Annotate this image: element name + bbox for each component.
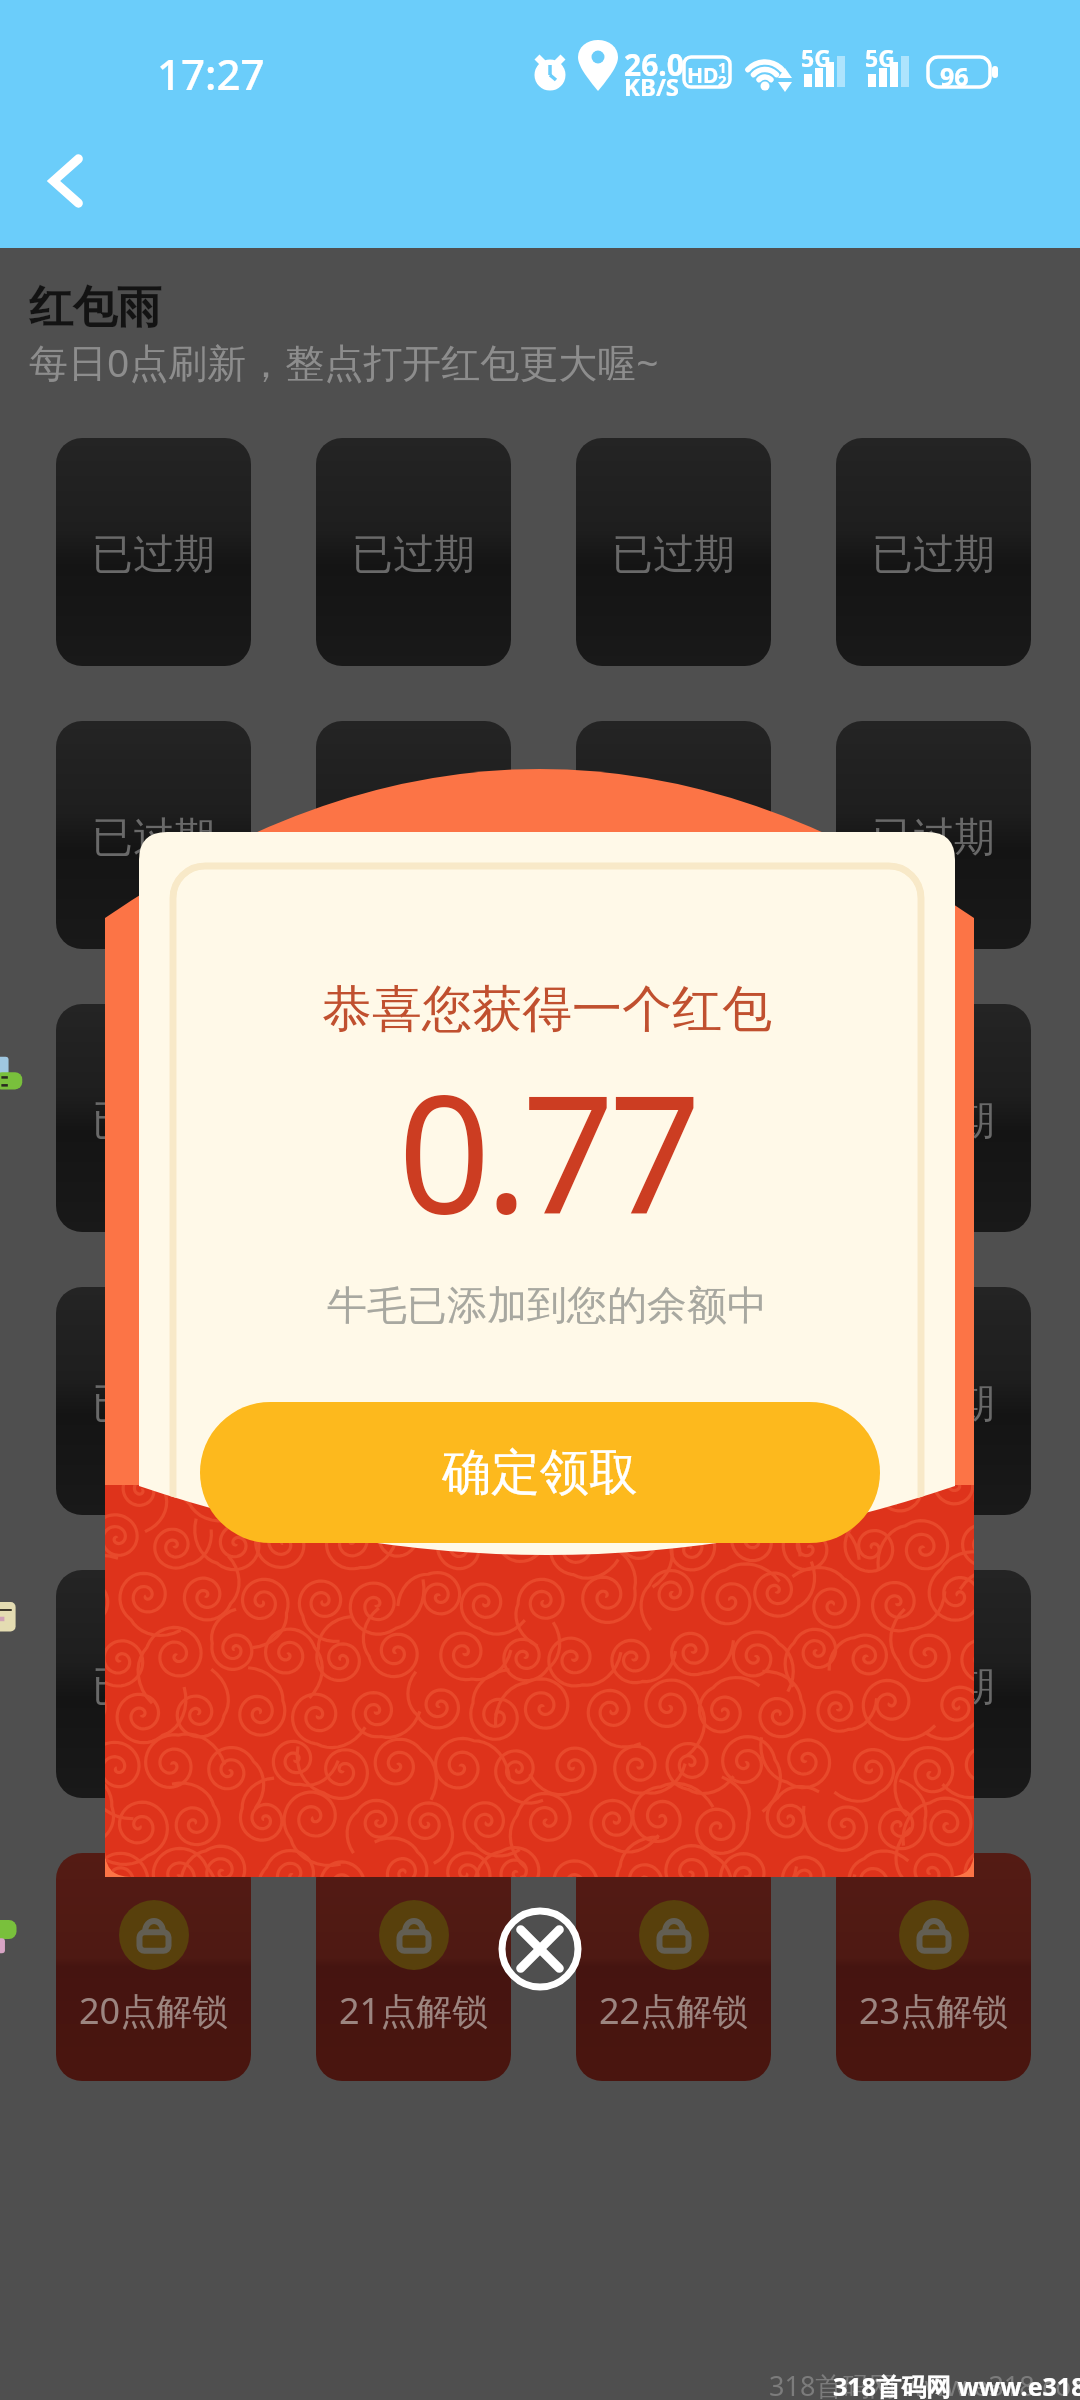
button[interactable]: 已过期 xyxy=(836,1287,1031,1515)
button[interactable]: 已过期 xyxy=(316,438,511,666)
staticText: 已过期 xyxy=(92,1661,215,1713)
button[interactable]: 已过期 xyxy=(56,1004,251,1232)
button[interactable]: 已过期 xyxy=(316,1570,511,1798)
staticText: 17:27 xyxy=(157,45,265,102)
button[interactable]: 已过期 xyxy=(836,438,1031,666)
button[interactable]: 22点解锁 xyxy=(576,1853,771,2081)
staticText: 21点解锁 xyxy=(339,1986,489,2035)
staticText: 已过期 xyxy=(92,1378,215,1430)
staticText: 5G xyxy=(865,42,895,73)
staticText: 已过期 xyxy=(352,1095,475,1147)
staticText: 已过期 xyxy=(612,1378,735,1430)
staticText: HD xyxy=(687,61,719,90)
staticText: 每日0点刷新，整点打开红包更大喔~ xyxy=(29,335,659,388)
staticText: 已过期 xyxy=(612,529,735,581)
staticText: 已过期 xyxy=(612,1661,735,1713)
button[interactable]: 已过期 xyxy=(576,1570,771,1798)
staticText: 23点解锁 xyxy=(859,1986,1009,2035)
staticText: 已过期 xyxy=(352,812,475,864)
button[interactable]: 已过期 xyxy=(56,438,251,666)
button[interactable]: 已过期 xyxy=(56,1570,251,1798)
staticText: 已过期 xyxy=(872,529,995,581)
staticText: 牛毛已添加到您的余额中 xyxy=(327,1280,767,1330)
staticText: 0.77 xyxy=(398,1040,696,1261)
button[interactable]: 已过期 xyxy=(576,1004,771,1232)
staticText: 恭喜您获得一个红包 xyxy=(322,978,772,1041)
staticText: 1 xyxy=(718,57,727,77)
staticText: 318首码网 www.e318.com xyxy=(833,2369,1080,2400)
button[interactable]: Back xyxy=(33,154,87,208)
staticText: 已过期 xyxy=(352,1378,475,1430)
button[interactable]: 已过期 xyxy=(316,1004,511,1232)
staticText: 22点解锁 xyxy=(599,1986,749,2035)
staticText: 已过期 xyxy=(352,529,475,581)
button[interactable]: 已过期 xyxy=(56,1287,251,1515)
staticText: 已过期 xyxy=(92,1095,215,1147)
staticText: 已过期 xyxy=(92,812,215,864)
staticText: 确定领取 xyxy=(442,1442,638,1504)
staticText: 已过期 xyxy=(92,529,215,581)
button[interactable]: 已过期 xyxy=(576,721,771,949)
staticText: 20点解锁 xyxy=(79,1986,229,2035)
staticText: 2 xyxy=(718,70,727,90)
staticText: 已过期 xyxy=(872,1378,995,1430)
staticText: KB/S xyxy=(624,70,680,103)
button[interactable]: 20点解锁 xyxy=(56,1853,251,2081)
button[interactable]: 已过期 xyxy=(316,1287,511,1515)
button[interactable]: 确定领取 xyxy=(200,1402,880,1543)
staticText: 5G xyxy=(801,42,831,73)
button[interactable]: 21点解锁 xyxy=(316,1853,511,2081)
button[interactable]: 已过期 xyxy=(576,438,771,666)
button[interactable]: 已过期 xyxy=(836,721,1031,949)
staticText: 已过期 xyxy=(872,1661,995,1713)
staticText: 已过期 xyxy=(872,812,995,864)
button[interactable]: Close xyxy=(498,1907,582,1991)
button[interactable]: 已过期 xyxy=(576,1287,771,1515)
staticText: 已过期 xyxy=(612,812,735,864)
button[interactable]: 23点解锁 xyxy=(836,1853,1031,2081)
staticText: 318首码网 www.e318.com xyxy=(769,2367,1080,2400)
staticText: 已过期 xyxy=(872,1095,995,1147)
staticText: 红包雨 xyxy=(29,280,161,335)
staticText: 已过期 xyxy=(352,1661,475,1713)
staticText: 已过期 xyxy=(612,1095,735,1147)
button[interactable]: 已过期 xyxy=(836,1004,1031,1232)
button[interactable]: 已过期 xyxy=(316,721,511,949)
staticText: 96 xyxy=(940,59,969,93)
staticText: 26.0 xyxy=(624,44,684,85)
button[interactable]: 已过期 xyxy=(56,721,251,949)
button[interactable]: 已过期 xyxy=(836,1570,1031,1798)
